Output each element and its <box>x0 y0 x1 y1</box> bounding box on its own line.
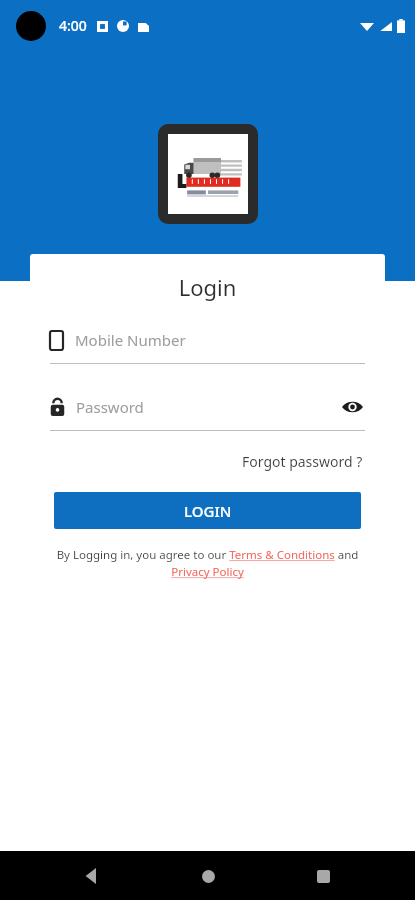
button[interactable]: Home <box>184 852 232 900</box>
staticText: Login <box>30 272 385 302</box>
button[interactable]: Forgot password ? <box>240 450 365 473</box>
button[interactable]: Show password <box>339 394 365 420</box>
staticText: Forgot password ? <box>242 452 363 471</box>
button[interactable]: Back <box>68 852 116 900</box>
button[interactable]: LOGIN <box>54 492 361 529</box>
button[interactable]: Password <box>50 392 365 431</box>
staticText: Password <box>76 397 144 417</box>
staticText: Mobile Number <box>75 330 186 350</box>
button[interactable]: Recent apps <box>299 852 347 900</box>
button[interactable]: Mobile Number <box>50 325 365 364</box>
staticText: LOGIN <box>184 501 232 521</box>
button[interactable]: By Logging in, you agree to our Terms & … <box>44 547 371 580</box>
staticText: 4:00 <box>59 16 87 35</box>
